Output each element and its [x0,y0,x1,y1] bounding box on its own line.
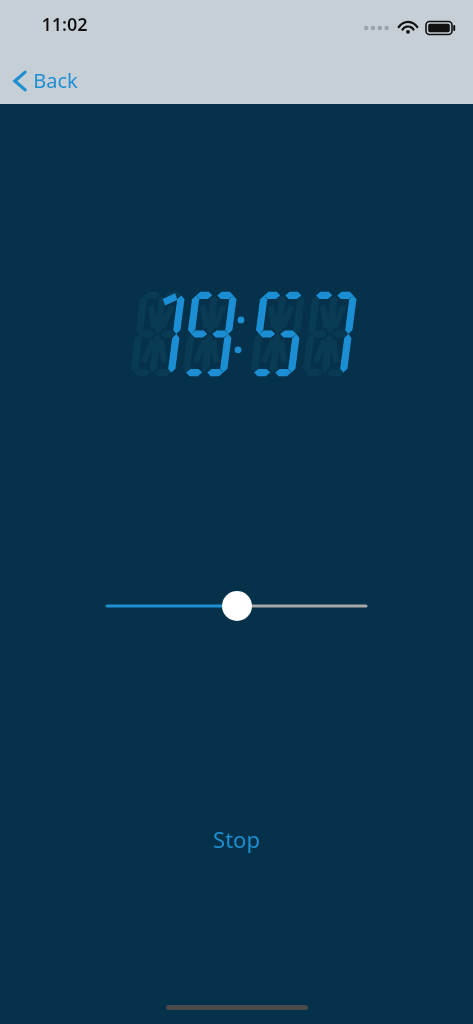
button[interactable]: Timer progress [0,582,473,630]
staticText: Back [33,67,78,94]
button[interactable]: Stop [185,816,288,862]
staticText: Stop [213,824,260,854]
staticText: 11:02 [41,12,88,37]
button[interactable]: Back [6,63,84,98]
